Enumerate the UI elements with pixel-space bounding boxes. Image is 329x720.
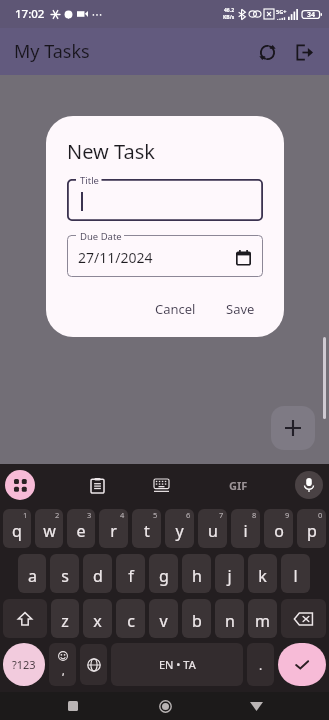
- staticText: KB/s: [223, 14, 235, 21]
- staticText: GIF: [229, 478, 248, 493]
- staticText: 17:02: [15, 6, 45, 22]
- button[interactable]: b: [182, 599, 211, 638]
- button[interactable]: q: [3, 509, 31, 548]
- button[interactable]: Add task: [271, 406, 315, 450]
- button[interactable]: Enter: [278, 643, 326, 686]
- staticText: f: [128, 565, 134, 587]
- button[interactable]: x: [83, 599, 112, 638]
- staticText: 4: [120, 510, 125, 520]
- staticText: My Tasks: [14, 39, 90, 64]
- button[interactable]: Clipboard: [81, 469, 113, 501]
- staticText: k: [258, 565, 267, 587]
- staticText: t: [144, 520, 150, 542]
- staticText: 5: [153, 510, 158, 520]
- button[interactable]: j: [215, 554, 244, 593]
- button[interactable]: l: [281, 554, 310, 593]
- button[interactable]: ?123: [3, 643, 45, 686]
- staticText: m: [255, 610, 270, 632]
- button[interactable]: Shift: [3, 599, 47, 638]
- button[interactable]: o: [264, 509, 293, 548]
- button[interactable]: t: [132, 509, 161, 548]
- button[interactable]: w: [35, 509, 63, 548]
- staticText: b: [192, 610, 202, 632]
- button[interactable]: n: [215, 599, 244, 638]
- staticText: 27/11/2024: [78, 248, 232, 267]
- button[interactable]: r: [99, 509, 128, 548]
- staticText: u: [208, 520, 218, 542]
- staticText: l: [293, 565, 298, 587]
- button[interactable]: e: [67, 509, 95, 548]
- button[interactable]: Save: [218, 295, 263, 323]
- button[interactable]: Keyboard settings: [145, 469, 177, 501]
- button[interactable]: GIF: [225, 474, 252, 497]
- staticText: 7: [219, 510, 224, 520]
- staticText: .: [259, 657, 263, 673]
- staticText: Due Date: [80, 230, 122, 243]
- button[interactable]: Home: [150, 692, 180, 720]
- button[interactable]: m: [248, 599, 277, 638]
- button[interactable]: v: [149, 599, 178, 638]
- staticText: New Task: [67, 138, 155, 165]
- staticText: 34: [307, 10, 316, 20]
- staticText: Cancel: [155, 300, 196, 318]
- staticText: d: [93, 565, 103, 587]
- button[interactable]: Logout: [287, 35, 321, 69]
- button[interactable]: f: [116, 554, 145, 593]
- staticText: y: [175, 520, 184, 542]
- button[interactable]: p: [297, 509, 326, 548]
- button[interactable]: k: [248, 554, 277, 593]
- staticText: p: [307, 520, 317, 542]
- button[interactable]: g: [149, 554, 178, 593]
- button[interactable]: i: [231, 509, 260, 548]
- staticText: 1: [23, 510, 28, 520]
- staticText: 46.2: [224, 7, 234, 14]
- staticText: j: [227, 565, 232, 587]
- button[interactable]: Refresh: [250, 35, 284, 69]
- staticText: r: [110, 520, 117, 542]
- button[interactable]: Voice input: [295, 471, 323, 499]
- button[interactable]: Keyboard modes: [5, 470, 35, 500]
- button[interactable]: Back: [241, 692, 271, 720]
- staticText: 9: [285, 510, 290, 520]
- button[interactable]: c: [116, 599, 145, 638]
- staticText: 0: [318, 510, 323, 520]
- staticText: a: [28, 565, 37, 587]
- staticText: 5G+: [276, 8, 287, 15]
- button[interactable]: Emoji: [49, 643, 76, 686]
- staticText: 6: [186, 510, 191, 520]
- button[interactable]: h: [182, 554, 211, 593]
- button[interactable]: Pick date: [232, 246, 254, 268]
- button[interactable]: y: [165, 509, 194, 548]
- staticText: ?123: [12, 657, 36, 672]
- staticText: z: [61, 610, 69, 632]
- staticText: x: [93, 610, 102, 632]
- staticText: h: [192, 565, 202, 587]
- staticText: n: [225, 610, 235, 632]
- button[interactable]: Change language: [80, 644, 107, 685]
- button[interactable]: Recents: [58, 692, 88, 720]
- button[interactable]: s: [50, 554, 79, 593]
- button[interactable]: u: [198, 509, 227, 548]
- staticText: c: [127, 610, 135, 632]
- staticText: EN • TA: [159, 657, 196, 672]
- button[interactable]: Backspace: [281, 599, 326, 638]
- button[interactable]: d: [83, 554, 112, 593]
- staticText: o: [274, 520, 284, 542]
- staticText: g: [159, 565, 169, 587]
- button[interactable]: z: [51, 599, 79, 638]
- button[interactable]: Cancel: [147, 295, 204, 323]
- button[interactable]: a: [18, 554, 46, 593]
- staticText: Title: [80, 174, 99, 187]
- staticText: ,: [62, 664, 65, 678]
- staticText: v: [159, 610, 168, 632]
- button[interactable]: .: [247, 643, 274, 686]
- staticText: i: [243, 520, 248, 542]
- staticText: q: [12, 520, 22, 542]
- staticText: 8: [252, 510, 257, 520]
- staticText: Save: [226, 300, 255, 318]
- staticText: e: [76, 520, 86, 542]
- button[interactable]: EN • TA: [111, 643, 243, 686]
- staticText: s: [61, 565, 69, 587]
- staticText: 3: [87, 510, 92, 520]
- staticText: 2: [55, 510, 60, 520]
